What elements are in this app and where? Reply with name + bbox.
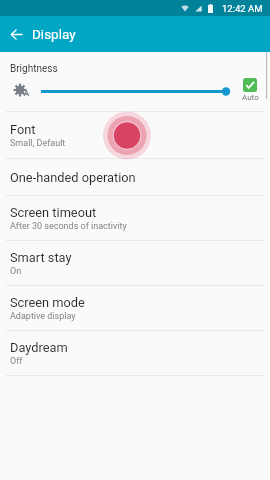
button[interactable]: One-handed operation	[0, 159, 270, 195]
staticText: Small, Default	[10, 138, 66, 149]
staticText: After 30 seconds of inactivity	[10, 221, 127, 232]
staticText: 12:42 AM	[222, 3, 263, 14]
button[interactable]: Screen mode	[0, 286, 270, 330]
staticText: Adaptive display	[10, 311, 76, 322]
staticText: On	[10, 266, 22, 277]
button[interactable]: Back	[0, 16, 33, 52]
staticText: Display	[32, 26, 76, 42]
staticText: Font	[10, 122, 36, 137]
button[interactable]: Screen timeout	[0, 196, 270, 240]
staticText: Daydream	[10, 340, 68, 355]
staticText: Screen timeout	[10, 205, 97, 220]
button[interactable]: Font	[0, 112, 270, 158]
button[interactable]: Smart stay	[0, 241, 270, 285]
staticText: Screen mode	[10, 295, 85, 310]
button[interactable]: Daydream	[0, 331, 270, 375]
staticText: Brightness	[10, 63, 58, 75]
button[interactable]: Auto	[239, 78, 261, 102]
staticText: Smart stay	[10, 250, 72, 265]
staticText: One-handed operation	[10, 170, 136, 185]
staticText: Auto	[242, 93, 259, 102]
staticText: Off	[10, 356, 23, 367]
